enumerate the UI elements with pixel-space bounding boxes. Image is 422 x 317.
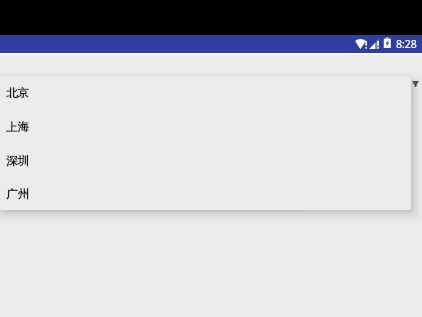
button[interactable]: 上海 — [0, 110, 411, 144]
button[interactable]: 广州 — [0, 178, 411, 210]
button[interactable]: 北京 — [0, 76, 411, 110]
staticText: 广州 — [6, 187, 29, 201]
button[interactable]: 深圳 — [0, 144, 411, 178]
staticText: 深圳 — [6, 154, 29, 168]
staticText: 上海 — [6, 120, 29, 134]
button[interactable]: Open dropdown — [407, 75, 422, 92]
staticText: 北京 — [6, 86, 29, 100]
staticText: 8:28 — [396, 37, 417, 51]
